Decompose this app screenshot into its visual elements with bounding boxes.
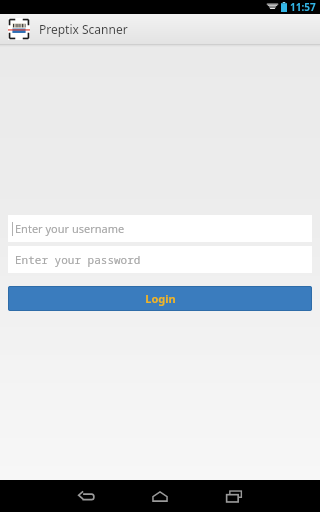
staticText: 11:57	[290, 0, 316, 14]
staticText: Preptix Scanner	[39, 21, 128, 37]
button[interactable]: Login	[8, 286, 312, 311]
button[interactable]: Home	[138, 480, 182, 512]
staticText: Enter your username	[15, 221, 125, 236]
button[interactable]: Back	[64, 480, 108, 512]
staticText: Enter your password	[15, 252, 141, 267]
button[interactable]: Enter your username	[8, 215, 312, 242]
staticText: Login	[145, 291, 176, 306]
button[interactable]: Recent apps	[212, 480, 256, 512]
button[interactable]: Enter your password	[8, 246, 312, 273]
